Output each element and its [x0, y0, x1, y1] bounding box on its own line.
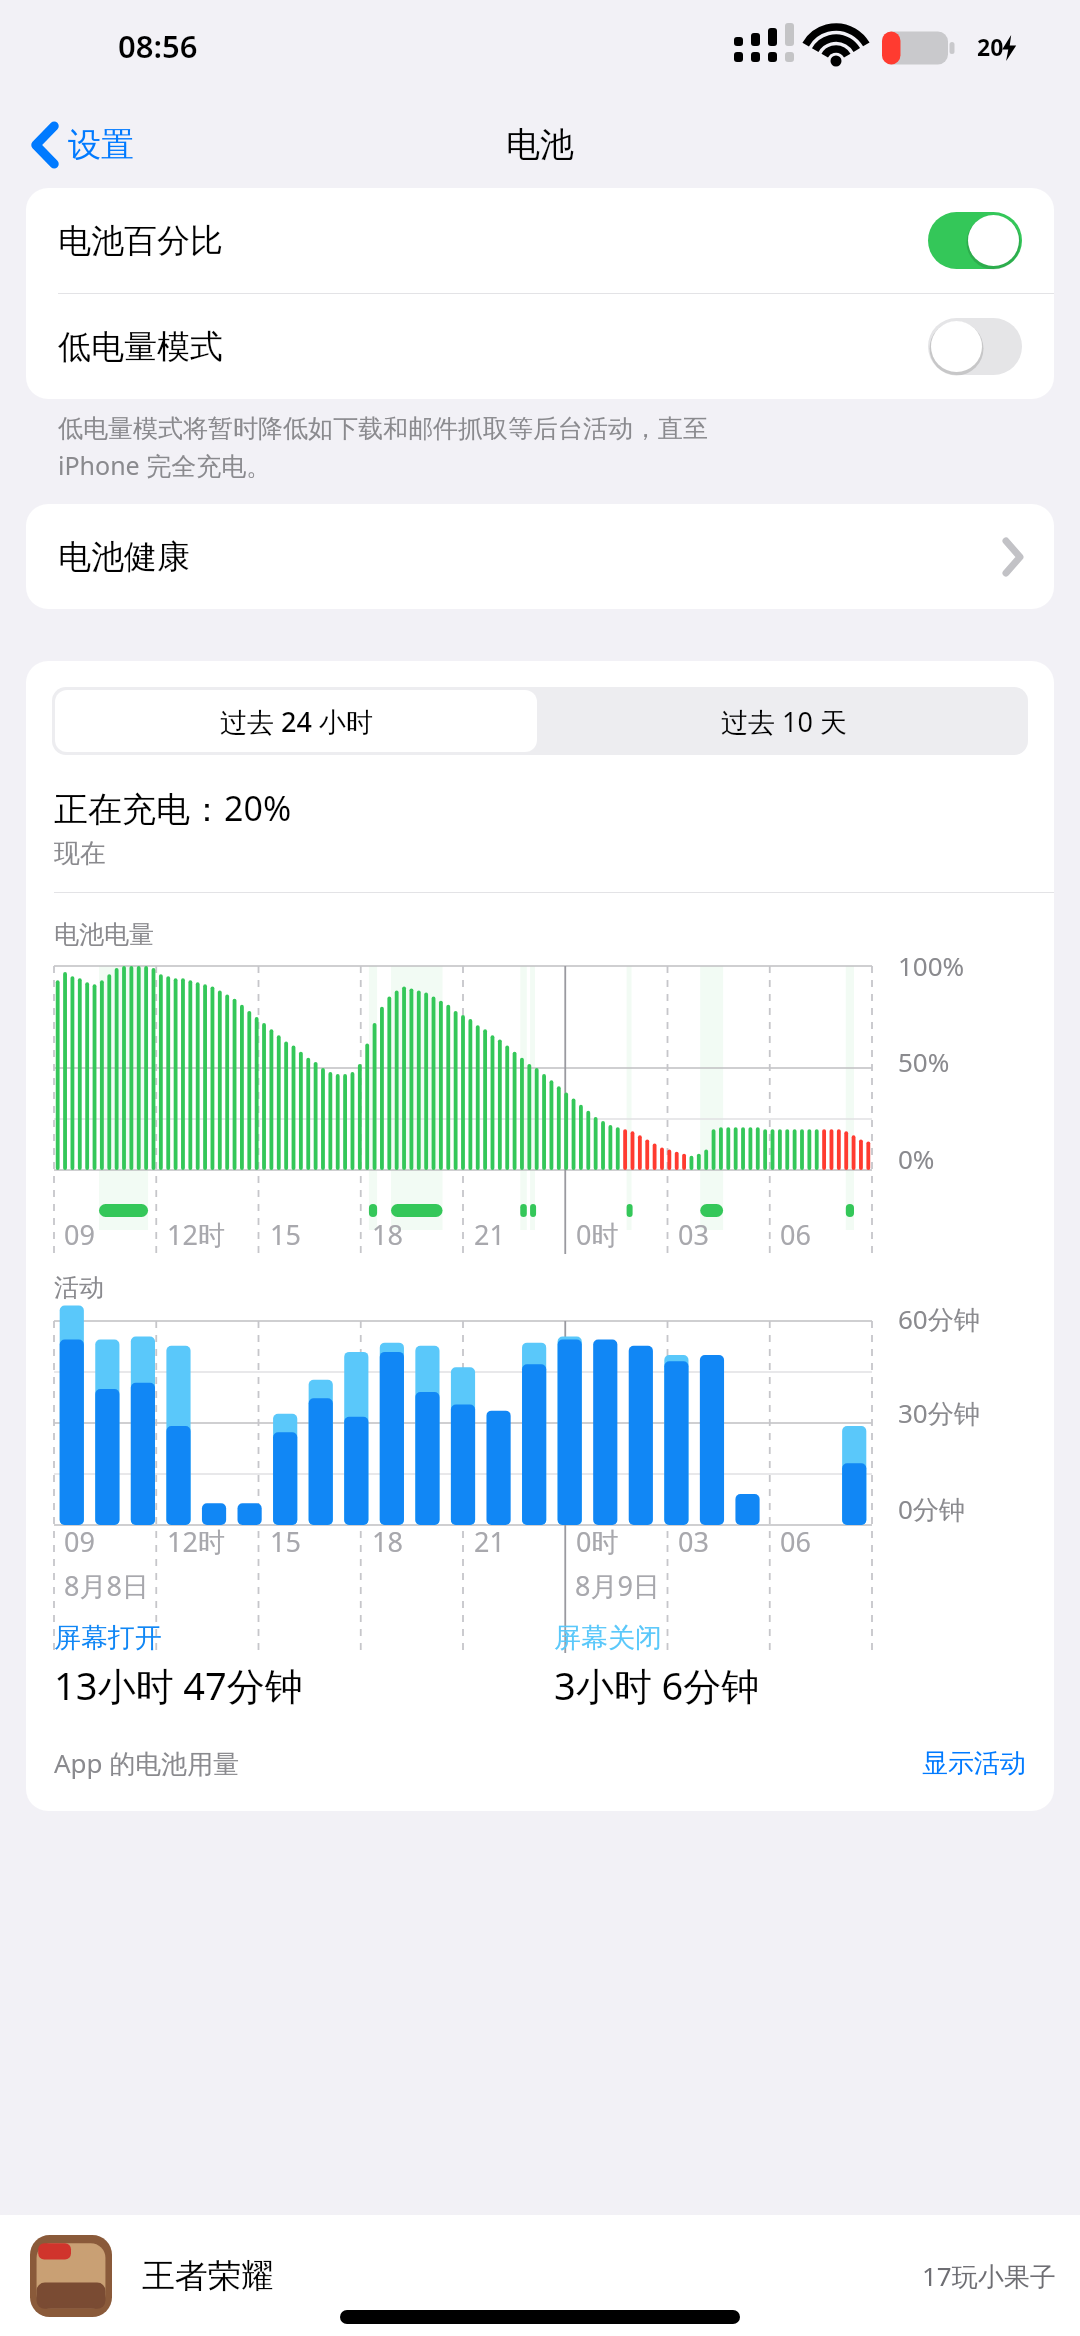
other: Toggle off	[928, 318, 1022, 375]
staticText: 06	[780, 1523, 811, 1560]
staticText: 0分钟	[898, 1491, 965, 1527]
button[interactable]: 过去 10 天	[540, 687, 1028, 755]
button[interactable]: 设置	[26, 118, 142, 172]
staticText: 08:56	[118, 25, 198, 67]
staticText: 0时	[576, 1523, 619, 1560]
staticText: 21	[474, 1523, 505, 1560]
staticText: 显示活动	[922, 1747, 1026, 1780]
staticText: 活动	[54, 1272, 104, 1303]
staticText: 过去 10 天	[721, 703, 847, 740]
button[interactable]: 显示活动	[922, 1747, 1026, 1780]
staticText: 09	[64, 1523, 95, 1560]
staticText: 电池	[506, 123, 574, 166]
button[interactable]: 电池百分比	[26, 188, 1054, 293]
staticText: 03	[678, 1523, 709, 1560]
staticText: 12时	[167, 1523, 225, 1560]
staticText: 09	[64, 1216, 95, 1253]
staticText: 王者荣耀	[142, 2255, 274, 2297]
staticText: 06	[780, 1216, 811, 1253]
staticText: 30分钟	[898, 1395, 980, 1431]
staticText: 屏幕关闭	[554, 1621, 662, 1655]
staticText: 13小时 47分钟	[54, 1659, 303, 1711]
staticText: 过去 24 小时	[220, 703, 373, 740]
staticText: App 的电池用量	[54, 1745, 240, 1781]
staticText: 15	[270, 1216, 301, 1253]
other: Toggle on	[928, 212, 1022, 269]
staticText: 18	[372, 1523, 403, 1560]
staticText: 电池百分比	[58, 220, 223, 262]
staticText: 3小时 6分钟	[554, 1659, 760, 1711]
staticText: 0%	[898, 1141, 935, 1176]
staticText: 12时	[167, 1216, 225, 1253]
staticText: 低电量模式	[58, 326, 223, 368]
staticText: 50%	[898, 1044, 950, 1079]
button[interactable]: 电池健康	[26, 504, 1054, 609]
staticText: 现在	[54, 837, 106, 870]
button[interactable]: 王者荣耀 app icon	[0, 2215, 1080, 2336]
staticText: 正在充电：20%	[54, 785, 292, 831]
staticText: 15	[270, 1523, 301, 1560]
staticText: 60分钟	[898, 1301, 980, 1337]
staticText: 100%	[898, 948, 965, 983]
staticText: 8月8日	[64, 1567, 149, 1604]
staticText: 低电量模式将暂时降低如下载和邮件抓取等后台活动，直至 iPhone 完全充电。	[58, 413, 708, 482]
staticText: 18	[372, 1216, 403, 1253]
staticText: 8月9日	[575, 1567, 660, 1604]
staticText: 03	[678, 1216, 709, 1253]
button[interactable]: 低电量模式	[26, 294, 1054, 399]
button[interactable]: 过去 24 小时	[55, 690, 537, 752]
staticText: 0时	[576, 1216, 619, 1253]
staticText: 电池健康	[58, 536, 190, 578]
staticText: 21	[474, 1216, 505, 1253]
staticText: 设置	[68, 124, 134, 166]
staticText: 17玩小果子	[922, 2258, 1056, 2294]
staticText: 电池电量	[54, 919, 154, 950]
staticText: 20	[977, 31, 1004, 62]
other: 王者荣耀 app icon	[30, 2235, 112, 2317]
staticText: 屏幕打开	[54, 1621, 162, 1655]
